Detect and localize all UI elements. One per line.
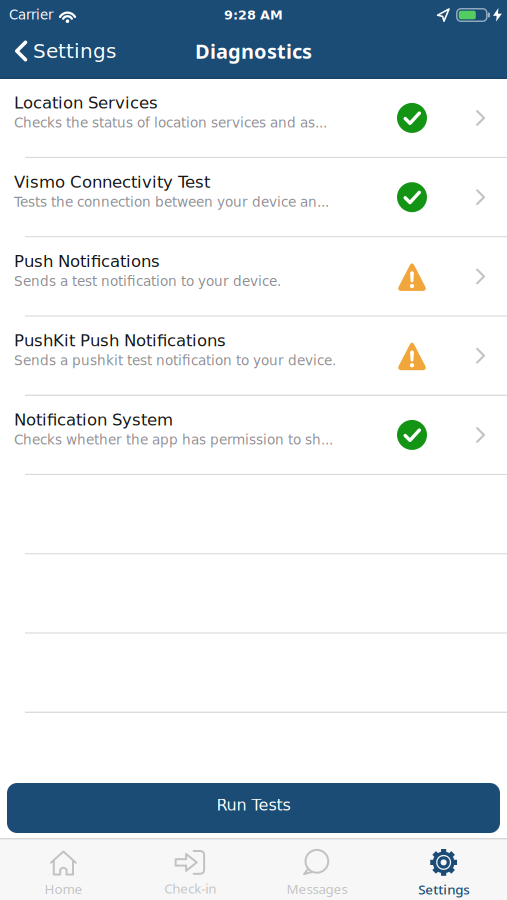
button[interactable]: PushKit Push Notifications <box>0 317 507 395</box>
staticText: Check-in <box>164 879 216 897</box>
button[interactable]: Settings <box>15 40 116 62</box>
button[interactable]: Settings <box>380 839 507 898</box>
staticText: Sends a pushkit test notification to you… <box>14 353 336 368</box>
staticText: Settings <box>33 40 116 62</box>
staticText: Sends a test notification to your device… <box>14 274 281 289</box>
button[interactable]: Run Tests <box>7 783 500 833</box>
staticText: Run Tests <box>216 796 290 814</box>
staticText: Carrier <box>9 7 53 22</box>
staticText: Checks the status of location services a… <box>14 115 327 130</box>
staticText: Vismo Connectivity Test <box>14 173 210 191</box>
staticText: Diagnostics <box>195 38 312 64</box>
button[interactable]: Home <box>0 840 127 898</box>
staticText: Location Services <box>14 93 158 112</box>
staticText: Push Notifications <box>14 252 160 271</box>
staticText: Messages <box>286 880 347 898</box>
staticText: Checks whether the app has permission to… <box>14 432 333 447</box>
staticText: PushKit Push Notifications <box>14 331 226 350</box>
staticText: Home <box>44 880 82 898</box>
button[interactable]: Check-in <box>127 840 254 897</box>
button[interactable]: Vismo Connectivity Test <box>0 158 507 236</box>
staticText: Tests the connection between your device… <box>14 194 329 210</box>
staticText: 9:28 AM <box>224 8 283 22</box>
button[interactable]: Push Notifications <box>0 237 507 315</box>
button[interactable]: Messages <box>253 840 380 898</box>
staticText: Notification System <box>14 410 173 429</box>
staticText: Settings <box>418 880 469 898</box>
button[interactable]: Location Services <box>0 79 507 157</box>
button[interactable]: Notification System <box>0 396 507 474</box>
